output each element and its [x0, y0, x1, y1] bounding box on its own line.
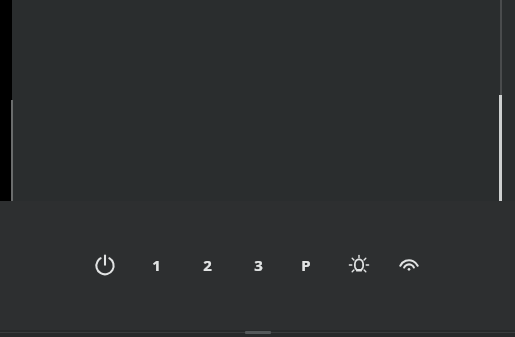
button[interactable]: Wi-Fi	[387, 243, 431, 287]
button[interactable]: Light	[337, 243, 381, 287]
button[interactable]: 3	[236, 243, 280, 287]
button[interactable]: 1	[134, 243, 178, 287]
button[interactable]: 2	[185, 243, 229, 287]
staticText: 1	[152, 255, 161, 275]
staticText: 3	[254, 255, 263, 275]
button[interactable]: P	[284, 243, 328, 287]
button[interactable]: Power	[83, 243, 127, 287]
staticText: P	[301, 255, 311, 275]
staticText: 2	[203, 255, 212, 275]
